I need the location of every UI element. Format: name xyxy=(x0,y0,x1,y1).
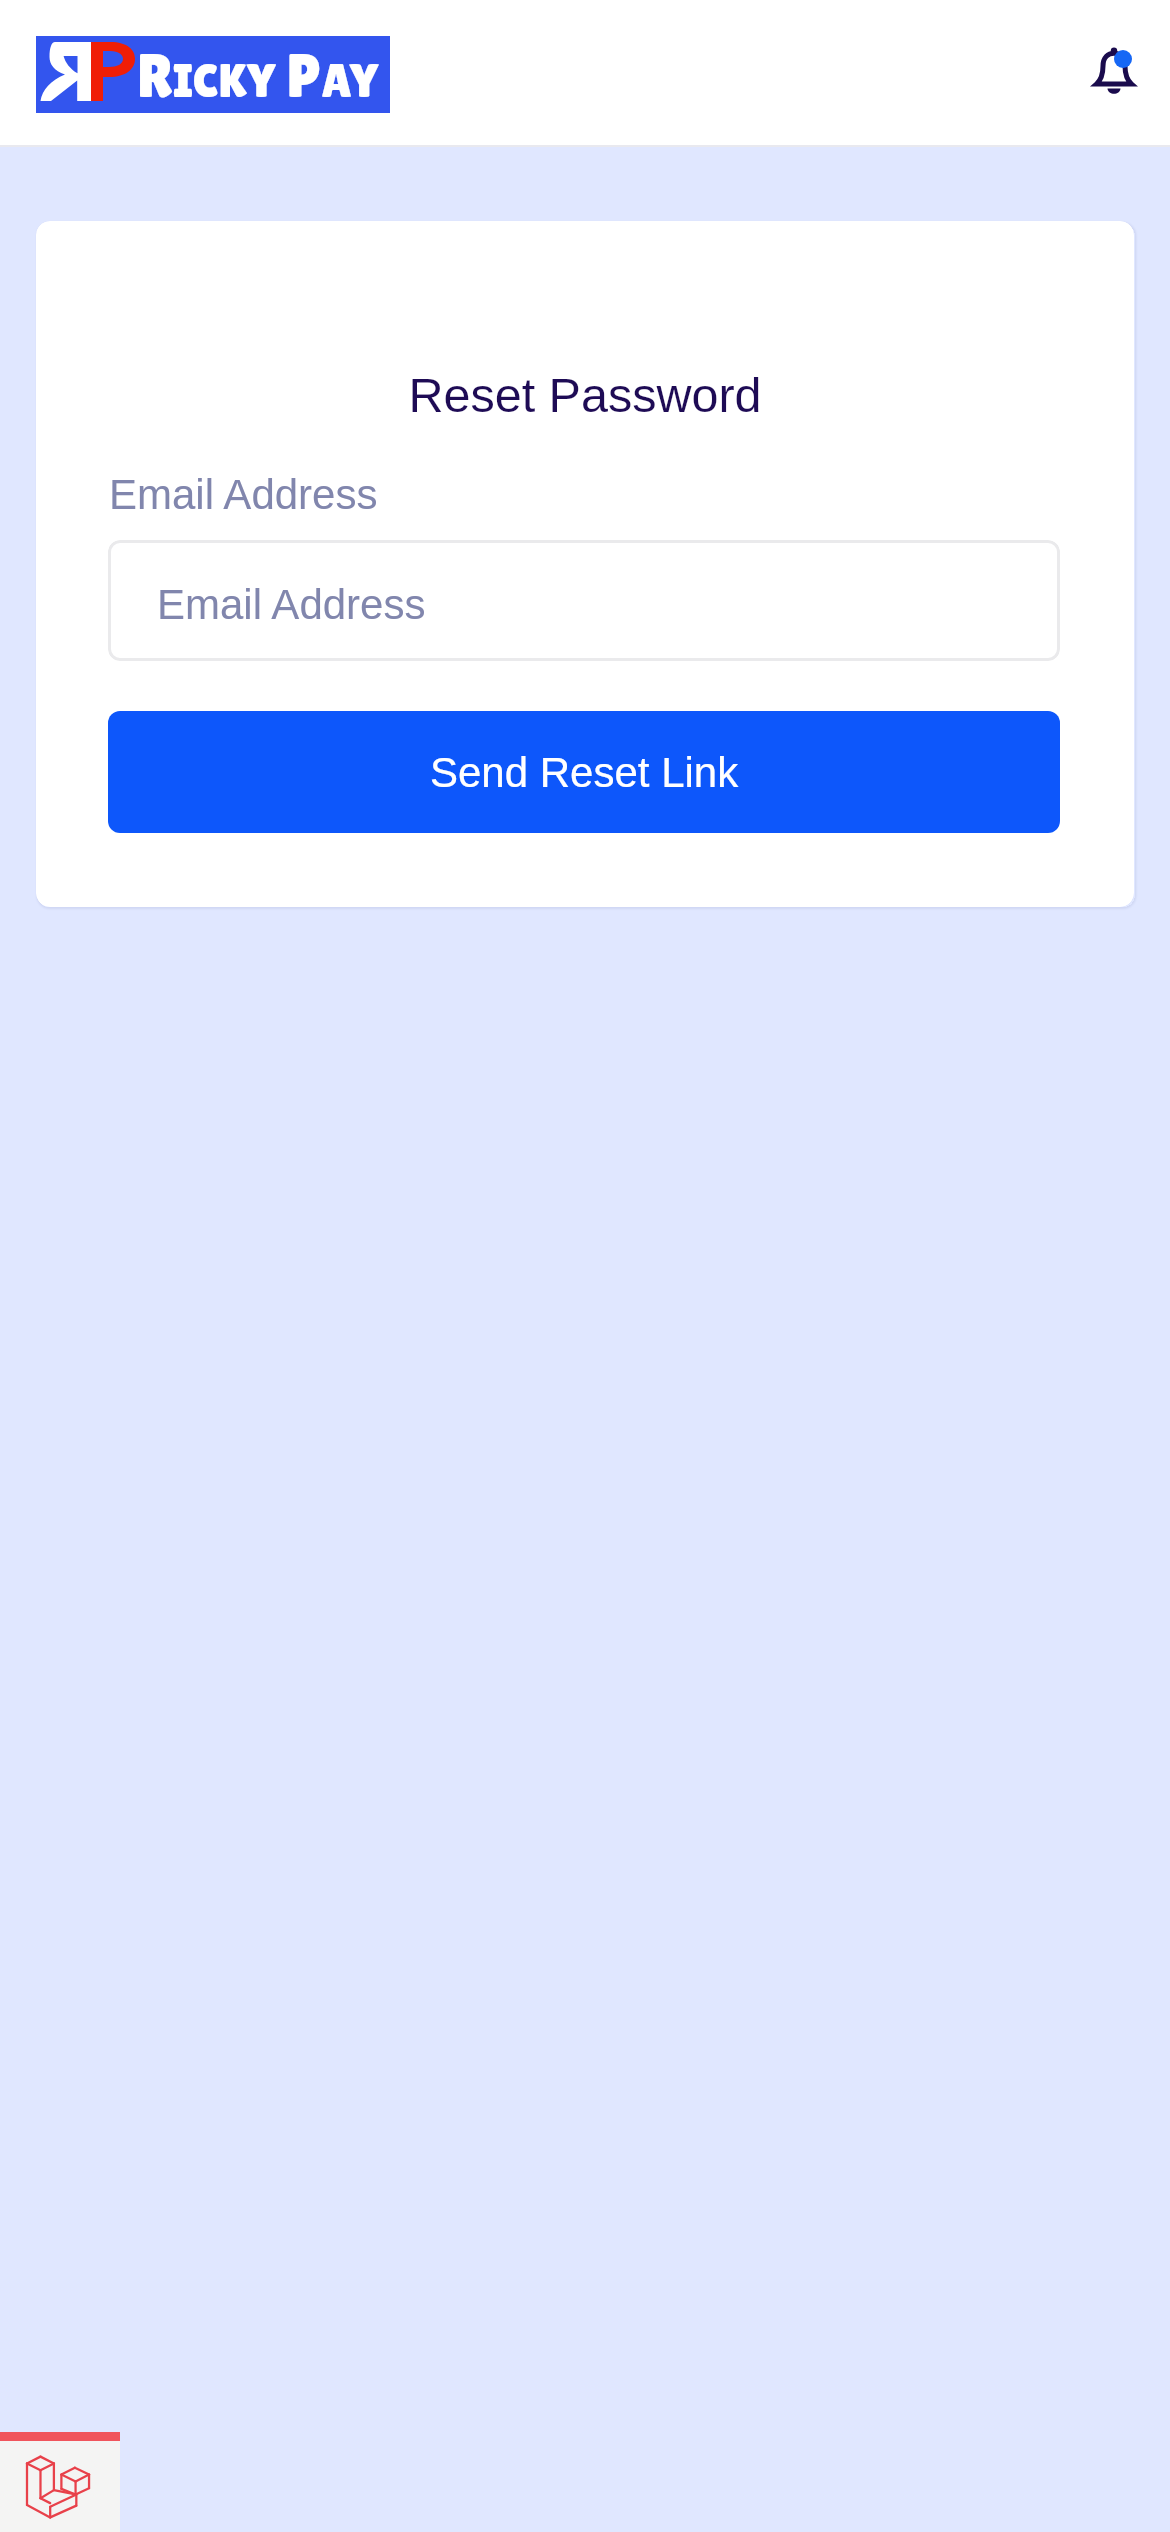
staticText: Reset Password xyxy=(36,368,1134,422)
button[interactable]: Ricky Pay home xyxy=(36,36,390,113)
button[interactable]: Notifications xyxy=(1082,39,1146,103)
button[interactable]: Email Address xyxy=(108,540,1060,661)
staticText: Email Address xyxy=(109,471,378,518)
button[interactable]: Laravel Debugbar xyxy=(0,2432,120,2532)
staticText: Send Reset Link xyxy=(430,749,739,796)
staticText: RICKY PAY xyxy=(137,41,379,111)
button[interactable]: Send Reset Link xyxy=(108,711,1060,833)
staticText: Email Address xyxy=(157,581,426,628)
